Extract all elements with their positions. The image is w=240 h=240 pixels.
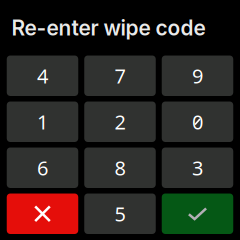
- staticText: 2: [114, 108, 125, 135]
- staticText: 0: [192, 108, 203, 135]
- button[interactable]: 4: [7, 55, 78, 96]
- button[interactable]: 5: [84, 193, 156, 234]
- button[interactable]: Cancel: [7, 193, 78, 234]
- button[interactable]: 1: [7, 101, 78, 142]
- button[interactable]: 9: [162, 55, 233, 96]
- button[interactable]: Confirm: [162, 193, 233, 234]
- staticText: 6: [37, 154, 48, 181]
- button[interactable]: 8: [84, 147, 156, 188]
- button[interactable]: 2: [84, 101, 156, 142]
- staticText: 1: [37, 108, 48, 135]
- button[interactable]: 0: [162, 101, 233, 142]
- staticText: 9: [192, 62, 203, 89]
- staticText: 8: [114, 154, 125, 181]
- button[interactable]: 3: [162, 147, 233, 188]
- button[interactable]: 7: [84, 55, 156, 96]
- staticText: 4: [37, 62, 48, 89]
- staticText: 3: [192, 154, 203, 181]
- button[interactable]: 6: [7, 147, 78, 188]
- staticText: Re-enter wipe code: [11, 15, 205, 41]
- staticText: 7: [114, 62, 125, 89]
- staticText: 5: [114, 200, 125, 227]
